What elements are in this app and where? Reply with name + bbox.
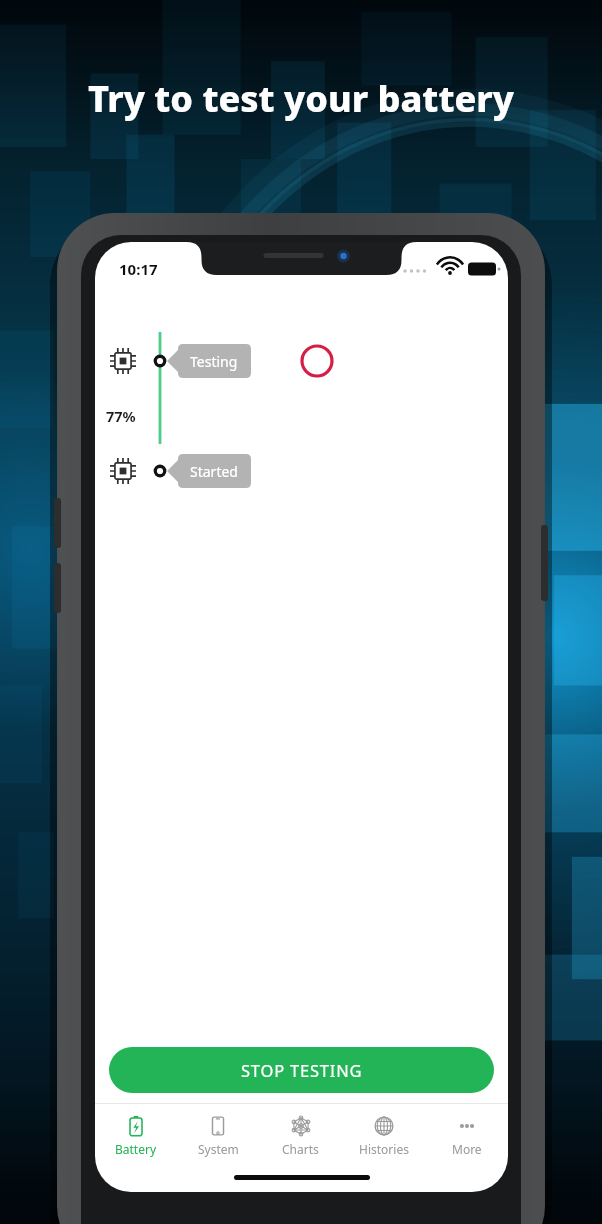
staticText: Histories (359, 1141, 409, 1157)
button[interactable]: System (177, 1109, 259, 1157)
staticText: Battery (115, 1141, 157, 1157)
button[interactable]: Started (167, 454, 251, 488)
staticText: More (452, 1141, 482, 1157)
staticText: Testing (190, 352, 238, 371)
button[interactable]: Charts (259, 1109, 342, 1157)
staticText: Charts (282, 1141, 319, 1157)
button[interactable]: More (425, 1109, 508, 1157)
staticText: STOP TESTING (241, 1059, 363, 1081)
staticText: System (198, 1141, 239, 1157)
staticText: 77% (106, 406, 136, 426)
button[interactable]: Histories (342, 1109, 425, 1157)
staticText: Started (190, 462, 238, 481)
other: Signal, Wi-Fi and battery status (402, 258, 494, 280)
staticText: 10:17 (119, 259, 158, 279)
button[interactable]: STOP TESTING (109, 1047, 494, 1093)
button[interactable]: Battery (95, 1109, 177, 1157)
button[interactable]: Testing (167, 344, 251, 378)
staticText: Try to test your battery (88, 74, 514, 123)
